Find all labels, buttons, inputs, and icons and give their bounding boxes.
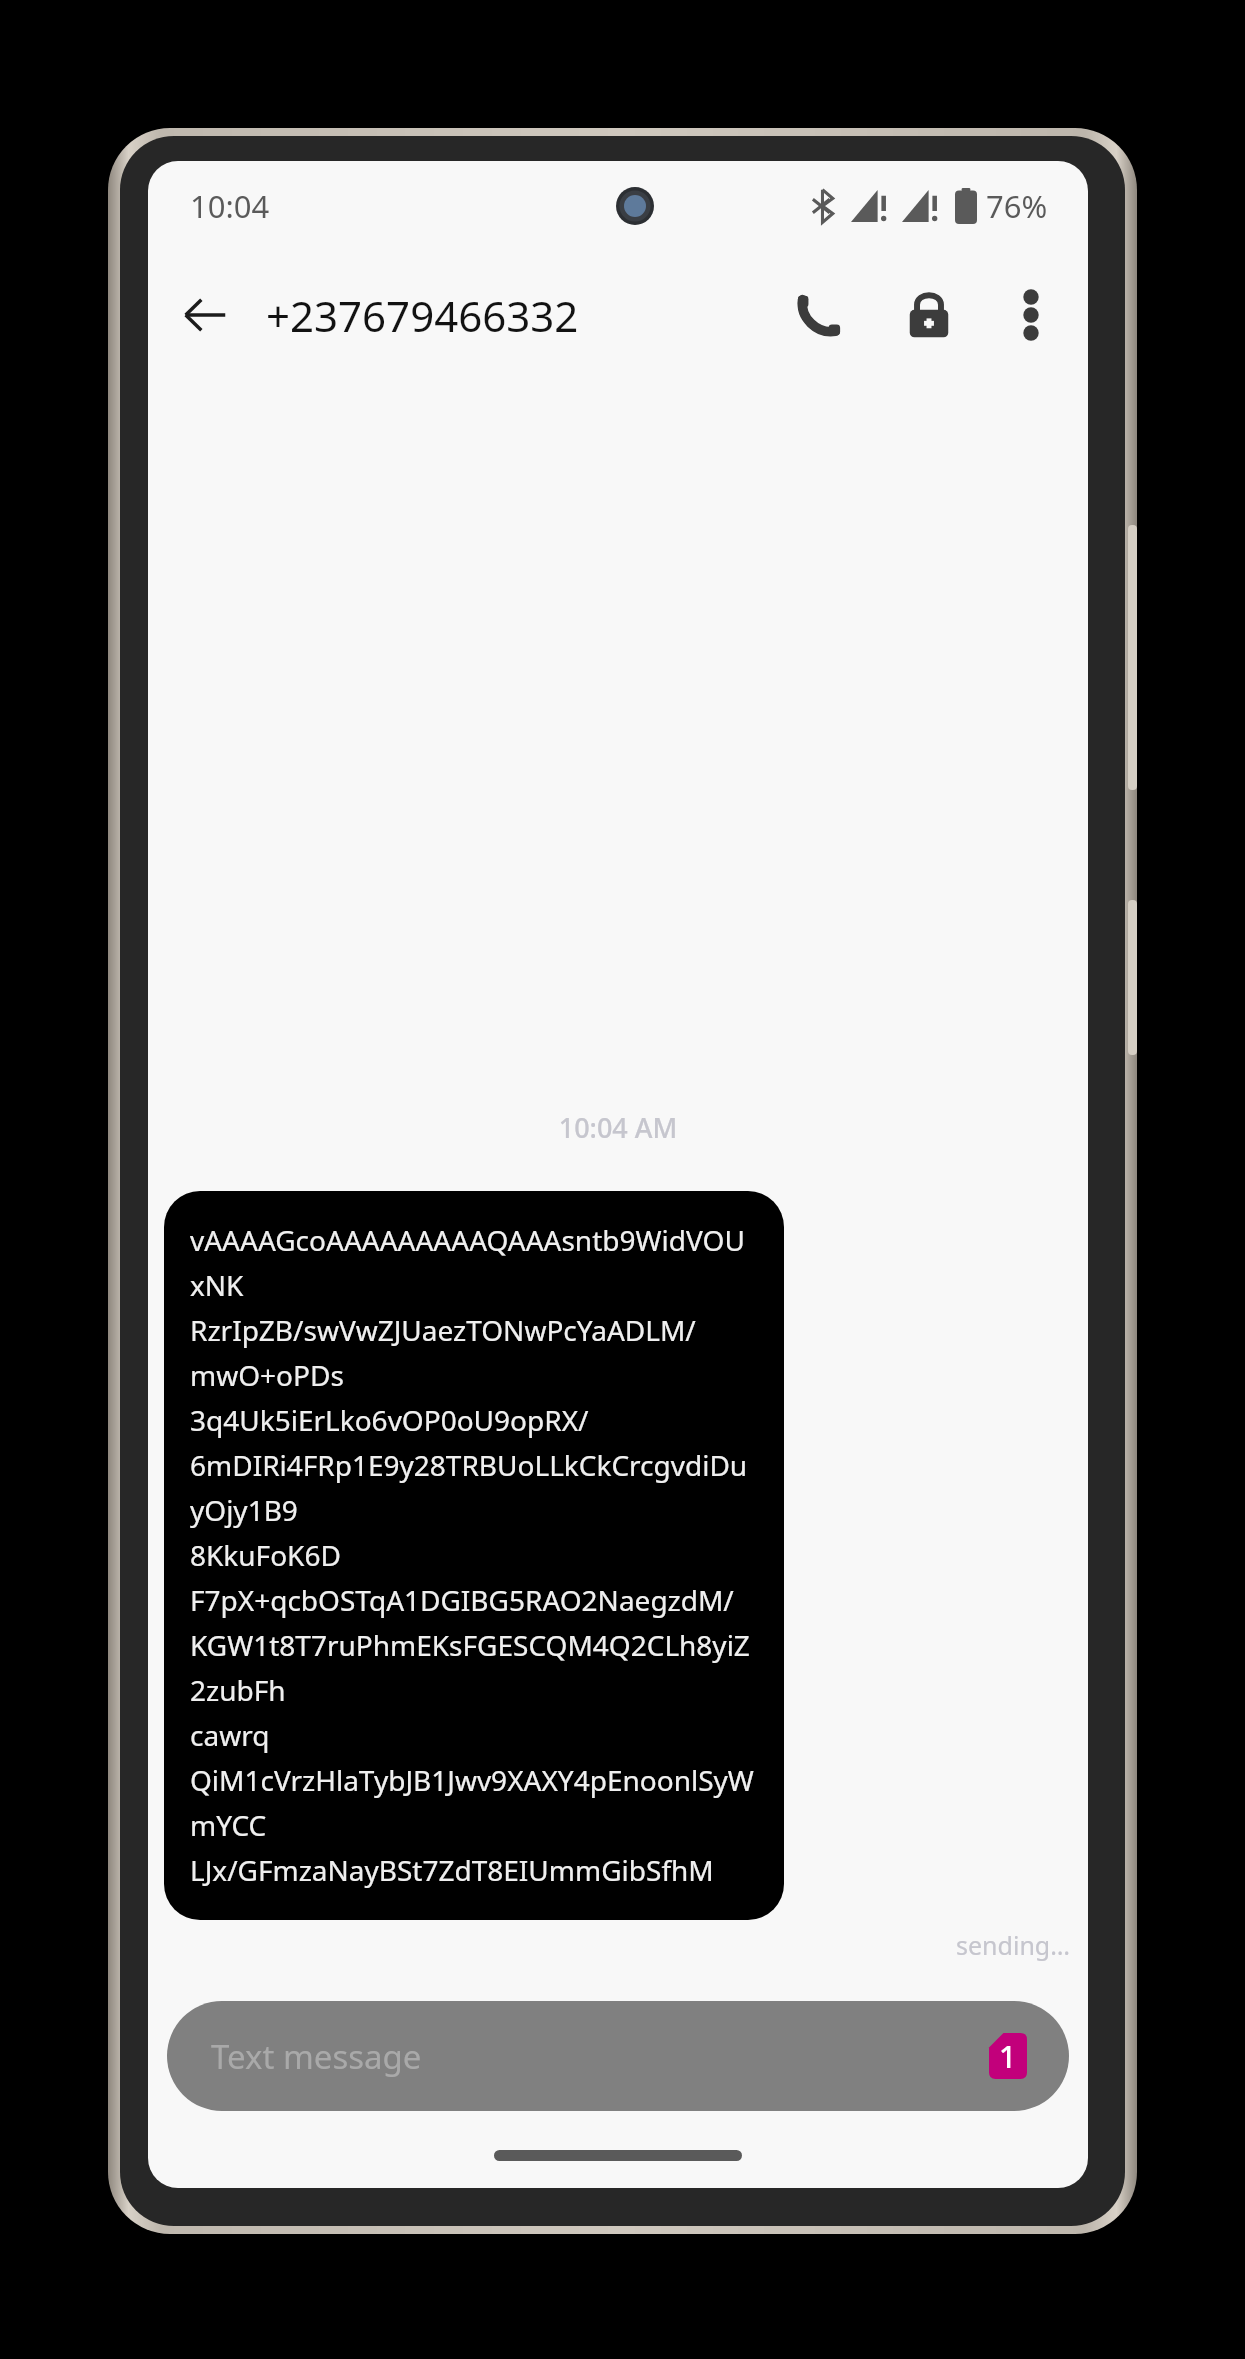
button[interactable]: More options <box>988 272 1074 358</box>
button[interactable]: SIM 1 <box>989 2033 1027 2079</box>
button[interactable]: Call <box>776 272 862 358</box>
staticText: +237679466332 <box>266 287 776 344</box>
staticText: 1 <box>999 2036 1017 2077</box>
staticText: vAAAAGcoAAAAAAAAAQAAAsntb9WidVOUxNK RzrI… <box>190 1221 758 1890</box>
button[interactable]: vAAAAGcoAAAAAAAAAQAAAsntb9WidVOUxNK RzrI… <box>164 1191 784 1920</box>
button[interactable]: Back <box>162 272 248 358</box>
staticText: sending… <box>148 1928 1070 1962</box>
button[interactable]: Add encryption key <box>886 272 972 358</box>
staticText: 76% <box>986 185 1048 227</box>
button[interactable]: Text message <box>167 2001 1069 2111</box>
staticText: Text message <box>211 2034 422 2079</box>
staticText: 10:04 <box>190 185 270 227</box>
staticText: 10:04 AM <box>148 1109 1088 1146</box>
